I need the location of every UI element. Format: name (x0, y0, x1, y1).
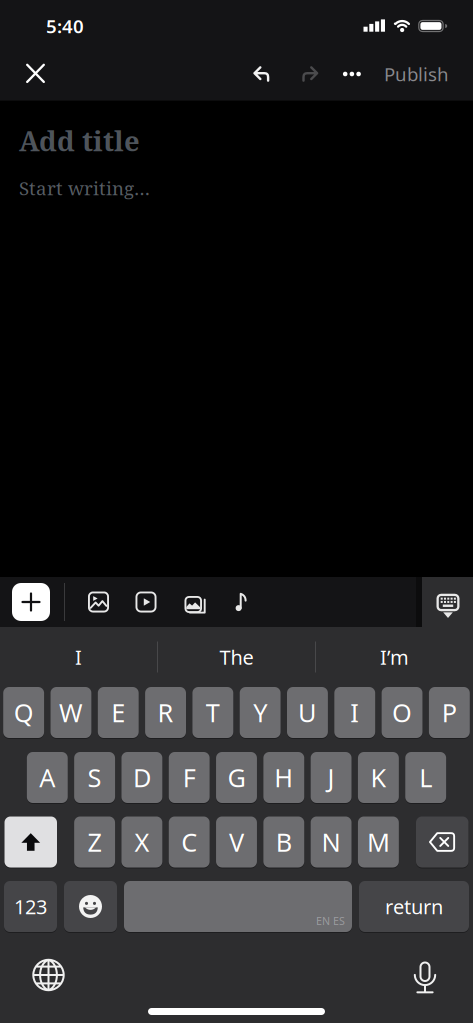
button[interactable]: More options (332, 48, 372, 100)
staticText: 5:40 (46, 14, 84, 38)
button[interactable]: J (311, 752, 352, 803)
button[interactable]: I (334, 687, 375, 738)
staticText: V (229, 825, 244, 859)
button[interactable]: N (311, 816, 351, 867)
staticText: P (442, 696, 457, 729)
button[interactable]: U (287, 687, 328, 738)
button[interactable]: C (169, 816, 210, 867)
staticText: I (75, 644, 82, 670)
staticText: Start writing… (19, 175, 150, 201)
staticText: J (328, 761, 335, 794)
button[interactable]: G (216, 752, 257, 803)
staticText: B (276, 825, 292, 859)
button[interactable]: S (74, 752, 115, 803)
button[interactable]: D (121, 752, 162, 803)
staticText: Y (253, 696, 267, 729)
staticText: O (392, 696, 412, 729)
button[interactable]: Publish (372, 47, 473, 101)
button[interactable]: B (263, 816, 304, 867)
staticText: Q (14, 696, 34, 729)
button[interactable]: V (216, 816, 257, 867)
button[interactable]: 123 (4, 881, 57, 932)
button[interactable]: Add video (110, 590, 158, 614)
staticText: F (183, 761, 196, 794)
staticText: M (367, 825, 390, 859)
staticText: The (219, 644, 253, 670)
staticText: U (298, 696, 317, 729)
button[interactable]: Shift (4, 816, 57, 867)
button[interactable]: I’m (316, 627, 473, 687)
staticText: Add title (19, 122, 140, 159)
staticText: return (385, 893, 443, 920)
button[interactable]: H (263, 752, 304, 803)
button[interactable]: Add gallery (158, 590, 205, 614)
button[interactable]: Add audio (205, 590, 253, 614)
button[interactable]: X (121, 816, 162, 867)
button[interactable]: Add image (65, 590, 110, 614)
button[interactable]: Z (74, 816, 115, 867)
button[interactable]: Y (240, 687, 281, 738)
staticText: N (322, 825, 341, 859)
button[interactable]: Hide keyboard (422, 577, 473, 627)
button[interactable]: O (382, 687, 422, 738)
staticText: Z (88, 825, 102, 859)
staticText: E (111, 696, 125, 729)
staticText: A (39, 761, 55, 794)
staticText: I’m (380, 644, 409, 670)
button[interactable]: Close (0, 47, 59, 100)
button[interactable]: Undo (240, 47, 286, 101)
staticText: I (350, 696, 359, 729)
staticText: H (274, 761, 293, 794)
staticText: W (59, 696, 83, 729)
button[interactable]: A (27, 752, 68, 803)
button[interactable]: return (359, 881, 469, 932)
button[interactable]: R (145, 687, 186, 738)
button[interactable]: F (169, 752, 210, 803)
staticText: 123 (14, 893, 47, 920)
staticText: D (133, 761, 151, 794)
button[interactable]: The (158, 627, 315, 687)
staticText: L (419, 761, 432, 794)
button[interactable]: Redo (286, 47, 332, 101)
staticText: T (206, 696, 220, 729)
button[interactable]: Q (3, 687, 44, 738)
staticText: S (88, 761, 102, 794)
button[interactable]: M (358, 816, 399, 867)
staticText: R (158, 696, 174, 729)
button[interactable]: E (98, 687, 139, 738)
button[interactable]: W (50, 687, 91, 738)
staticText: Publish (384, 62, 449, 86)
button[interactable]: I (0, 627, 157, 687)
button[interactable]: Add block (0, 583, 50, 621)
button[interactable]: Delete (416, 816, 468, 867)
staticText: K (370, 761, 386, 794)
button[interactable]: P (429, 687, 470, 738)
button[interactable]: L (405, 752, 446, 803)
staticText: EN ES (316, 914, 345, 928)
button[interactable]: Emoji (64, 881, 117, 932)
button[interactable]: K (358, 752, 399, 803)
staticText: C (181, 825, 197, 859)
staticText: G (227, 761, 245, 794)
button[interactable]: T (192, 687, 233, 738)
button[interactable]: space (124, 881, 352, 932)
staticText: X (134, 825, 149, 859)
